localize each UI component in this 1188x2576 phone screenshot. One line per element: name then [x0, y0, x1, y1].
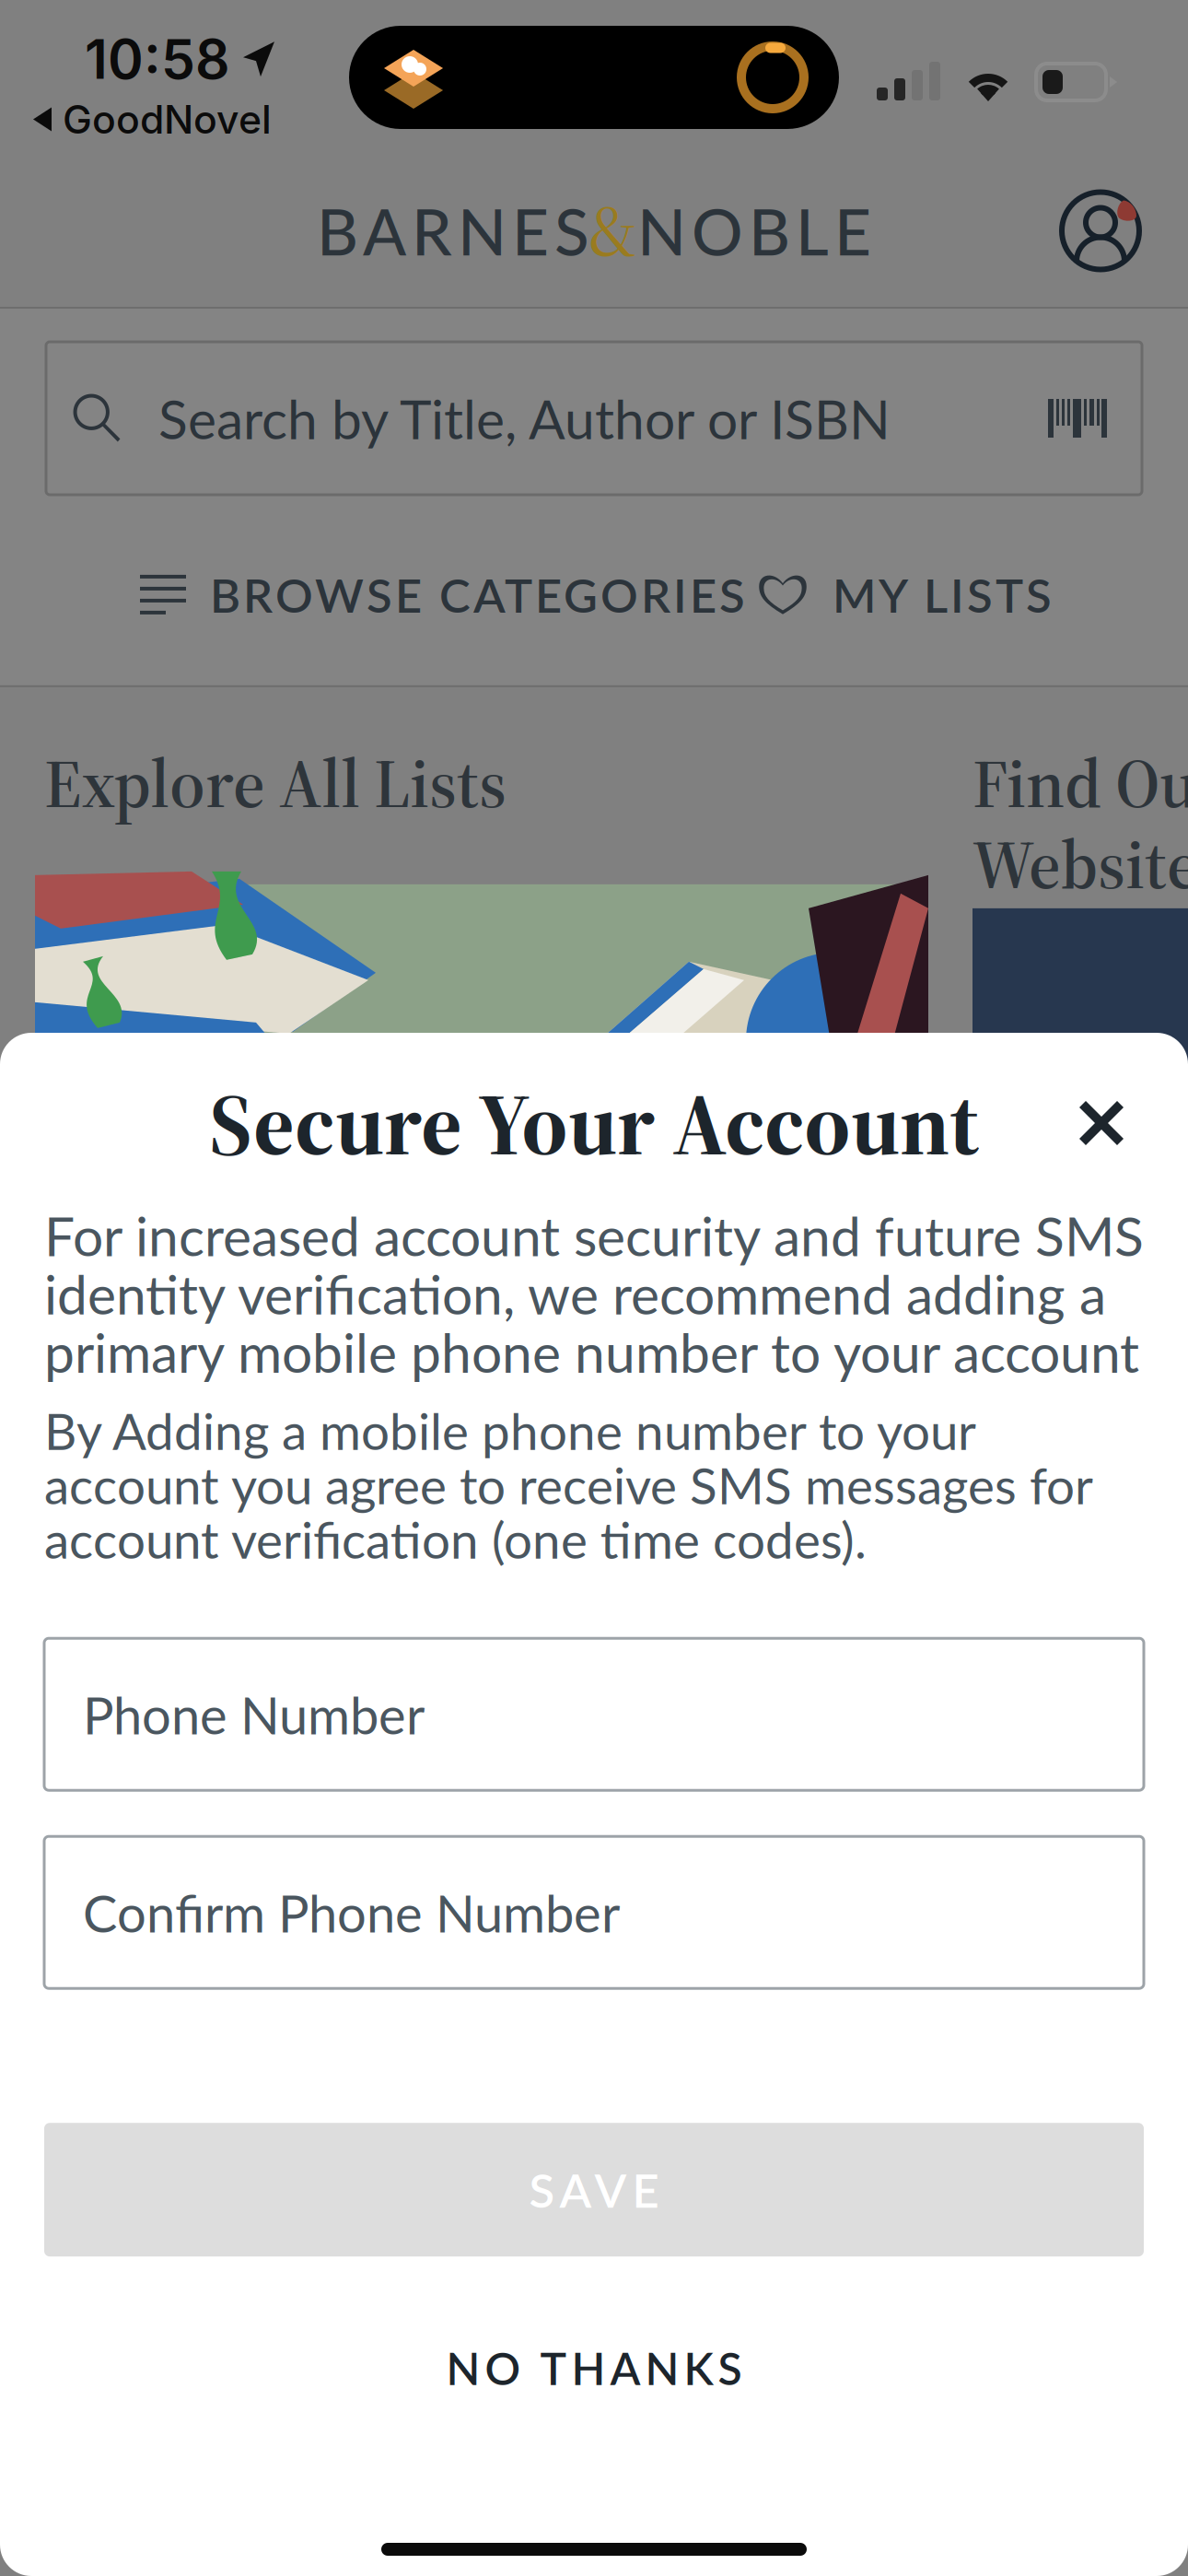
- staticText: BROWSE CATEGORIES: [210, 567, 745, 623]
- staticText: Secure Your Account: [209, 1062, 979, 1184]
- staticText: Pre: [1019, 1010, 1145, 1138]
- staticText: Explore All Lists: [44, 742, 507, 823]
- button[interactable]: Confirm Phone Number: [44, 1836, 1144, 1988]
- button[interactable]: SAVE: [44, 2123, 1144, 2256]
- staticText: 10:58: [85, 26, 230, 92]
- button[interactable]: MY LISTS: [757, 567, 1052, 623]
- staticText: Find Out Website: [973, 742, 1188, 905]
- staticText: By Adding a mobile phone number to your …: [44, 1403, 1092, 1566]
- staticText: Phone Number: [83, 1683, 425, 1745]
- staticText: Confirm Phone Number: [83, 1881, 620, 1943]
- staticText: SAVE: [529, 2162, 659, 2218]
- staticText: BARNES: [317, 192, 589, 269]
- staticText: MY LISTS: [833, 567, 1052, 623]
- button[interactable]: Close: [1065, 1086, 1138, 1160]
- staticText: NOBLE: [637, 192, 871, 269]
- staticText: GoodNovel: [63, 96, 272, 143]
- button[interactable]: BROWSE CATEGORIES: [140, 567, 745, 623]
- button[interactable]: Phone Number: [44, 1638, 1144, 1790]
- button[interactable]: Account: [1059, 189, 1188, 272]
- staticText: NO THANKS: [446, 2341, 742, 2395]
- staticText: Search by Title, Author or ISBN: [158, 386, 891, 451]
- staticText: &: [589, 182, 637, 280]
- button[interactable]: NO THANKS: [44, 2317, 1144, 2419]
- button[interactable]: Search by Title, Author or ISBN: [46, 342, 1142, 495]
- staticText: For increased account security and futur…: [44, 1206, 1144, 1381]
